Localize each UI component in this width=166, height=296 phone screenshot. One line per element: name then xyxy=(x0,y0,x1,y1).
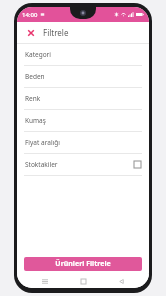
staticText: Ürünleri Filtrele xyxy=(55,259,111,269)
button[interactable]: Back xyxy=(111,274,131,288)
button[interactable]: Recent apps xyxy=(35,274,55,288)
staticText: Beden xyxy=(25,72,45,81)
button[interactable]: Stoktakiler xyxy=(17,154,149,176)
button[interactable]: Fiyat aralığı xyxy=(17,132,149,154)
staticText: Fiyat aralığı xyxy=(25,138,60,147)
button[interactable]: Beden xyxy=(17,66,149,88)
staticText: Stoktakiler xyxy=(25,160,58,169)
staticText: Renk xyxy=(25,94,41,103)
staticText: Kumaş xyxy=(25,116,46,125)
button[interactable]: Renk xyxy=(17,88,149,110)
staticText: Kategori xyxy=(25,50,51,59)
button[interactable]: Ürünleri Filtrele xyxy=(24,257,142,271)
button[interactable]: Close xyxy=(24,26,38,40)
button[interactable]: Kumaş xyxy=(17,110,149,132)
button[interactable]: Kategori xyxy=(17,44,149,66)
staticText: 14:00 xyxy=(22,11,38,19)
button[interactable]: Home xyxy=(73,274,93,288)
staticText: Filtrele xyxy=(43,27,69,38)
